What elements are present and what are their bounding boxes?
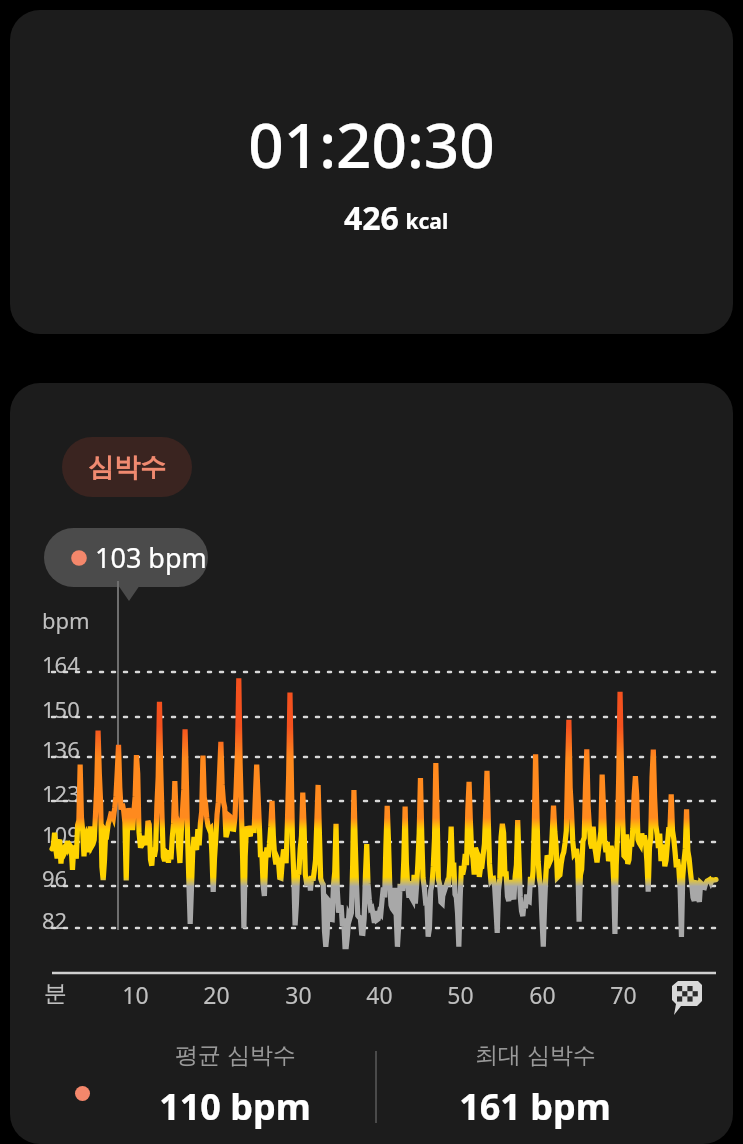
- staticText: 평균 심박수: [175, 1038, 296, 1069]
- staticText: 분: [44, 979, 67, 1008]
- staticText: 103 bpm: [95, 539, 207, 576]
- staticText: 20: [203, 979, 230, 1010]
- button[interactable]: 103 bpm: [44, 528, 208, 587]
- staticText: 150: [42, 694, 80, 724]
- button[interactable]: 평균 심박수: [100, 1038, 370, 1087]
- staticText: 최대 심박수: [475, 1038, 596, 1069]
- button[interactable]: 최대 심박수: [400, 1038, 670, 1087]
- staticText: 심박수: [88, 451, 166, 484]
- staticText: 164: [42, 649, 80, 679]
- staticText: 109: [42, 819, 80, 849]
- staticText: 110 bpm: [159, 1082, 311, 1131]
- staticText: 50: [447, 979, 474, 1010]
- button[interactable]: 01:20:30: [10, 10, 733, 334]
- staticText: 01:20:30: [248, 102, 495, 186]
- button[interactable]: Heart rate chart: [40, 598, 720, 998]
- staticText: 60: [529, 979, 556, 1010]
- staticText: 426: [344, 196, 399, 240]
- staticText: bpm: [42, 605, 90, 635]
- staticText: 123: [42, 778, 80, 808]
- staticText: 10: [122, 979, 149, 1010]
- staticText: 161 bpm: [459, 1082, 611, 1131]
- button[interactable]: 심박수: [62, 437, 192, 497]
- staticText: kcal: [400, 207, 449, 236]
- staticText: 30: [285, 979, 312, 1010]
- staticText: 40: [366, 979, 393, 1010]
- staticText: 82: [42, 905, 68, 935]
- staticText: 70: [610, 979, 637, 1010]
- staticText: 136: [42, 734, 80, 764]
- staticText: 96: [42, 863, 68, 893]
